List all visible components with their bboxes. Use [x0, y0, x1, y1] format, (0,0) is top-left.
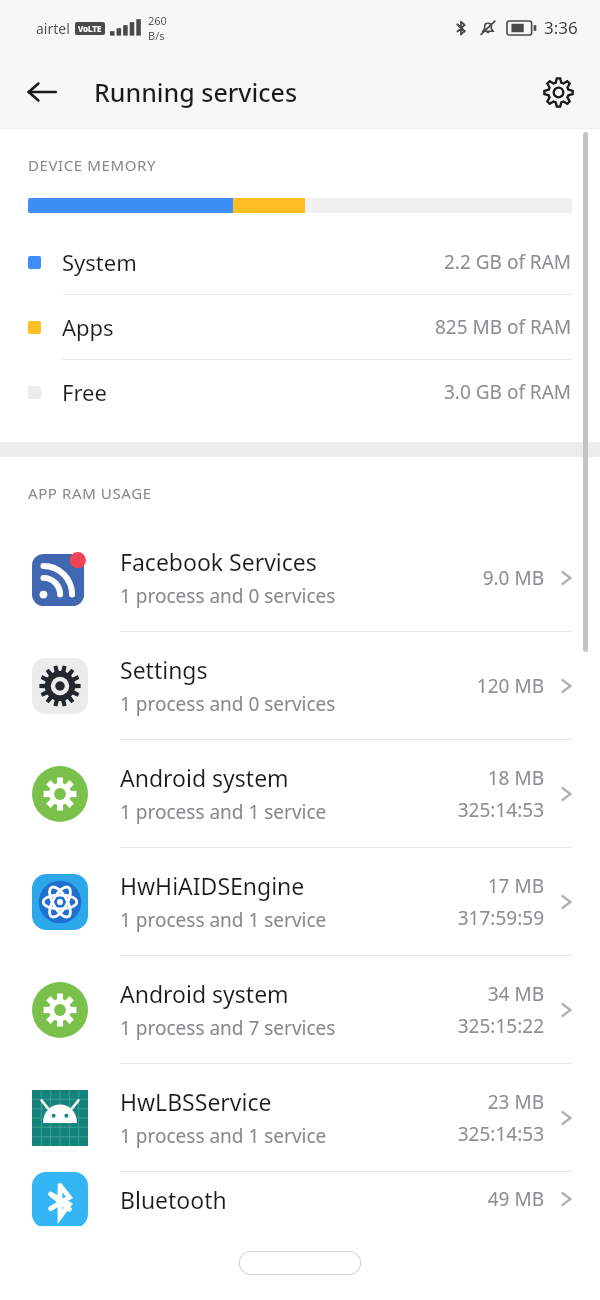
- staticText: 9.0 MB: [482, 565, 544, 591]
- staticText: Settings: [120, 654, 208, 685]
- staticText: APP RAM USAGE: [28, 483, 152, 503]
- staticText: 1 process and 7 services: [120, 1015, 336, 1041]
- staticText: 325:14:53: [457, 797, 544, 823]
- staticText: HwHiAIDSEngine: [120, 870, 305, 901]
- button[interactable]: Apps: [0, 295, 600, 360]
- staticText: 1 process and 0 services: [120, 691, 336, 717]
- staticText: 3.0 GB of RAM: [444, 379, 572, 405]
- staticText: System: [62, 247, 137, 277]
- staticText: 317:59:59: [457, 905, 544, 931]
- staticText: 1 process and 0 services: [120, 583, 336, 609]
- staticText: 825 MB of RAM: [435, 314, 572, 340]
- staticText: 3:36: [544, 16, 578, 39]
- staticText: 120 MB: [476, 673, 544, 699]
- staticText: B/s: [148, 28, 165, 43]
- staticText: airtel: [36, 19, 70, 38]
- staticText: 1 process and 1 service: [120, 1123, 327, 1149]
- button[interactable]: Free: [0, 360, 600, 424]
- staticText: 2.2 GB of RAM: [444, 249, 572, 275]
- staticText: Free: [62, 377, 107, 407]
- button[interactable]: Android system: [0, 956, 600, 1064]
- staticText: 1 process and 1 service: [120, 799, 327, 825]
- staticText: Running services: [94, 75, 298, 109]
- staticText: 34 MB: [487, 981, 544, 1007]
- staticText: 260: [148, 13, 167, 28]
- button[interactable]: Bluetooth: [0, 1172, 600, 1226]
- button[interactable]: Home gesture bar: [239, 1251, 361, 1275]
- staticText: 1 process and 1 service: [120, 907, 327, 933]
- button[interactable]: System: [0, 230, 600, 295]
- staticText: Bluetooth: [120, 1184, 227, 1215]
- button[interactable]: HwLBSService: [0, 1064, 600, 1172]
- staticText: Android system: [120, 978, 289, 1009]
- button[interactable]: Back: [14, 64, 70, 120]
- staticText: Apps: [62, 312, 114, 342]
- staticText: DEVICE MEMORY: [28, 155, 156, 175]
- staticText: 49 MB: [487, 1186, 544, 1212]
- button[interactable]: Facebook Services: [0, 524, 600, 632]
- staticText: 18 MB: [487, 765, 544, 791]
- button[interactable]: Settings: [0, 632, 600, 740]
- staticText: Facebook Services: [120, 546, 317, 577]
- staticText: 17 MB: [487, 873, 544, 899]
- staticText: 325:14:53: [457, 1121, 544, 1147]
- staticText: HwLBSService: [120, 1086, 272, 1117]
- staticText: Android system: [120, 762, 289, 793]
- staticText: 325:15:22: [457, 1013, 544, 1039]
- button[interactable]: Settings: [530, 64, 586, 120]
- staticText: 23 MB: [487, 1089, 544, 1115]
- button[interactable]: Android system: [0, 740, 600, 848]
- button[interactable]: HwHiAIDSEngine: [0, 848, 600, 956]
- staticText: VoLTE: [78, 23, 102, 34]
